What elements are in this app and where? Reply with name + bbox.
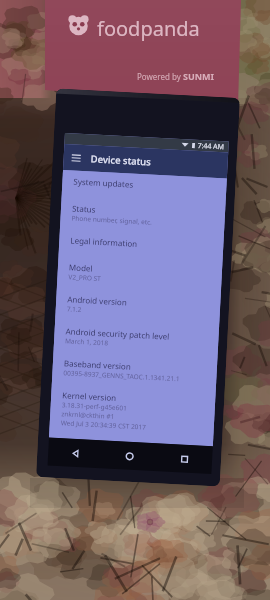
staticText: Device status — [90, 152, 152, 169]
staticText: foodpanda — [97, 15, 200, 42]
staticText: Status — [72, 202, 96, 215]
button[interactable]: Back — [48, 437, 103, 468]
staticText: Legal information — [70, 234, 138, 249]
staticText: Kernel version — [62, 389, 116, 403]
staticText: 7.1.2 — [67, 304, 82, 314]
button[interactable]: Recent apps — [156, 443, 213, 474]
button[interactable]: Android version — [56, 293, 220, 321]
staticText: SUNMI — [183, 70, 215, 82]
staticText: Phone number, signal, etc. — [71, 213, 153, 227]
staticText: 3.18.31-perf-g45e601 — [61, 400, 128, 413]
staticText: Powered by — [137, 71, 183, 82]
staticText: Model — [69, 261, 93, 274]
staticText: March 1, 2018 — [65, 336, 108, 347]
staticText: znkrnl@ckthin #1 — [61, 409, 115, 421]
button[interactable]: Legal information — [59, 234, 223, 253]
staticText: 00395-8937_GENNS_TAOC.1.1341.21.1 — [63, 368, 180, 383]
staticText: System updates — [73, 175, 134, 190]
button[interactable]: Model — [57, 261, 222, 289]
button[interactable]: Home — [101, 440, 158, 471]
staticText: Baseband version — [64, 357, 131, 372]
button[interactable]: Status — [60, 202, 225, 230]
button[interactable]: Baseband version — [52, 357, 217, 385]
staticText: V2_PRO ST — [68, 272, 102, 283]
staticText: Android security patch level — [65, 325, 170, 342]
staticText: Android version — [67, 293, 127, 307]
button[interactable]: Android security patch level — [54, 325, 219, 353]
button[interactable]: System updates — [62, 175, 227, 194]
staticText: Wed Jul 3 20:34:39 CST 2017 — [61, 418, 147, 432]
button[interactable]: Open navigation menu — [69, 151, 83, 165]
button[interactable]: Kernel version — [50, 389, 215, 435]
staticText: 7:44 AM — [197, 141, 225, 152]
